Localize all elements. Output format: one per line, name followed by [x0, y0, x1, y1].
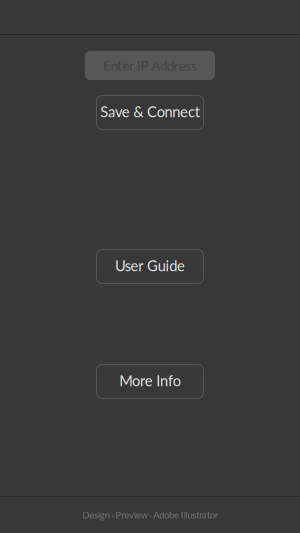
staticText: More Info [119, 372, 181, 389]
staticText: Enter IP Address [103, 57, 197, 73]
staticText: Design · Preview · Adobe Illustrator [82, 509, 218, 521]
staticText: Save & Connect [100, 103, 200, 120]
staticText: User Guide [115, 257, 185, 274]
button[interactable]: Save & Connect [96, 95, 204, 130]
button[interactable]: More Info [96, 364, 204, 399]
button[interactable]: Enter IP Address [85, 51, 215, 80]
button[interactable]: User Guide [96, 249, 204, 284]
